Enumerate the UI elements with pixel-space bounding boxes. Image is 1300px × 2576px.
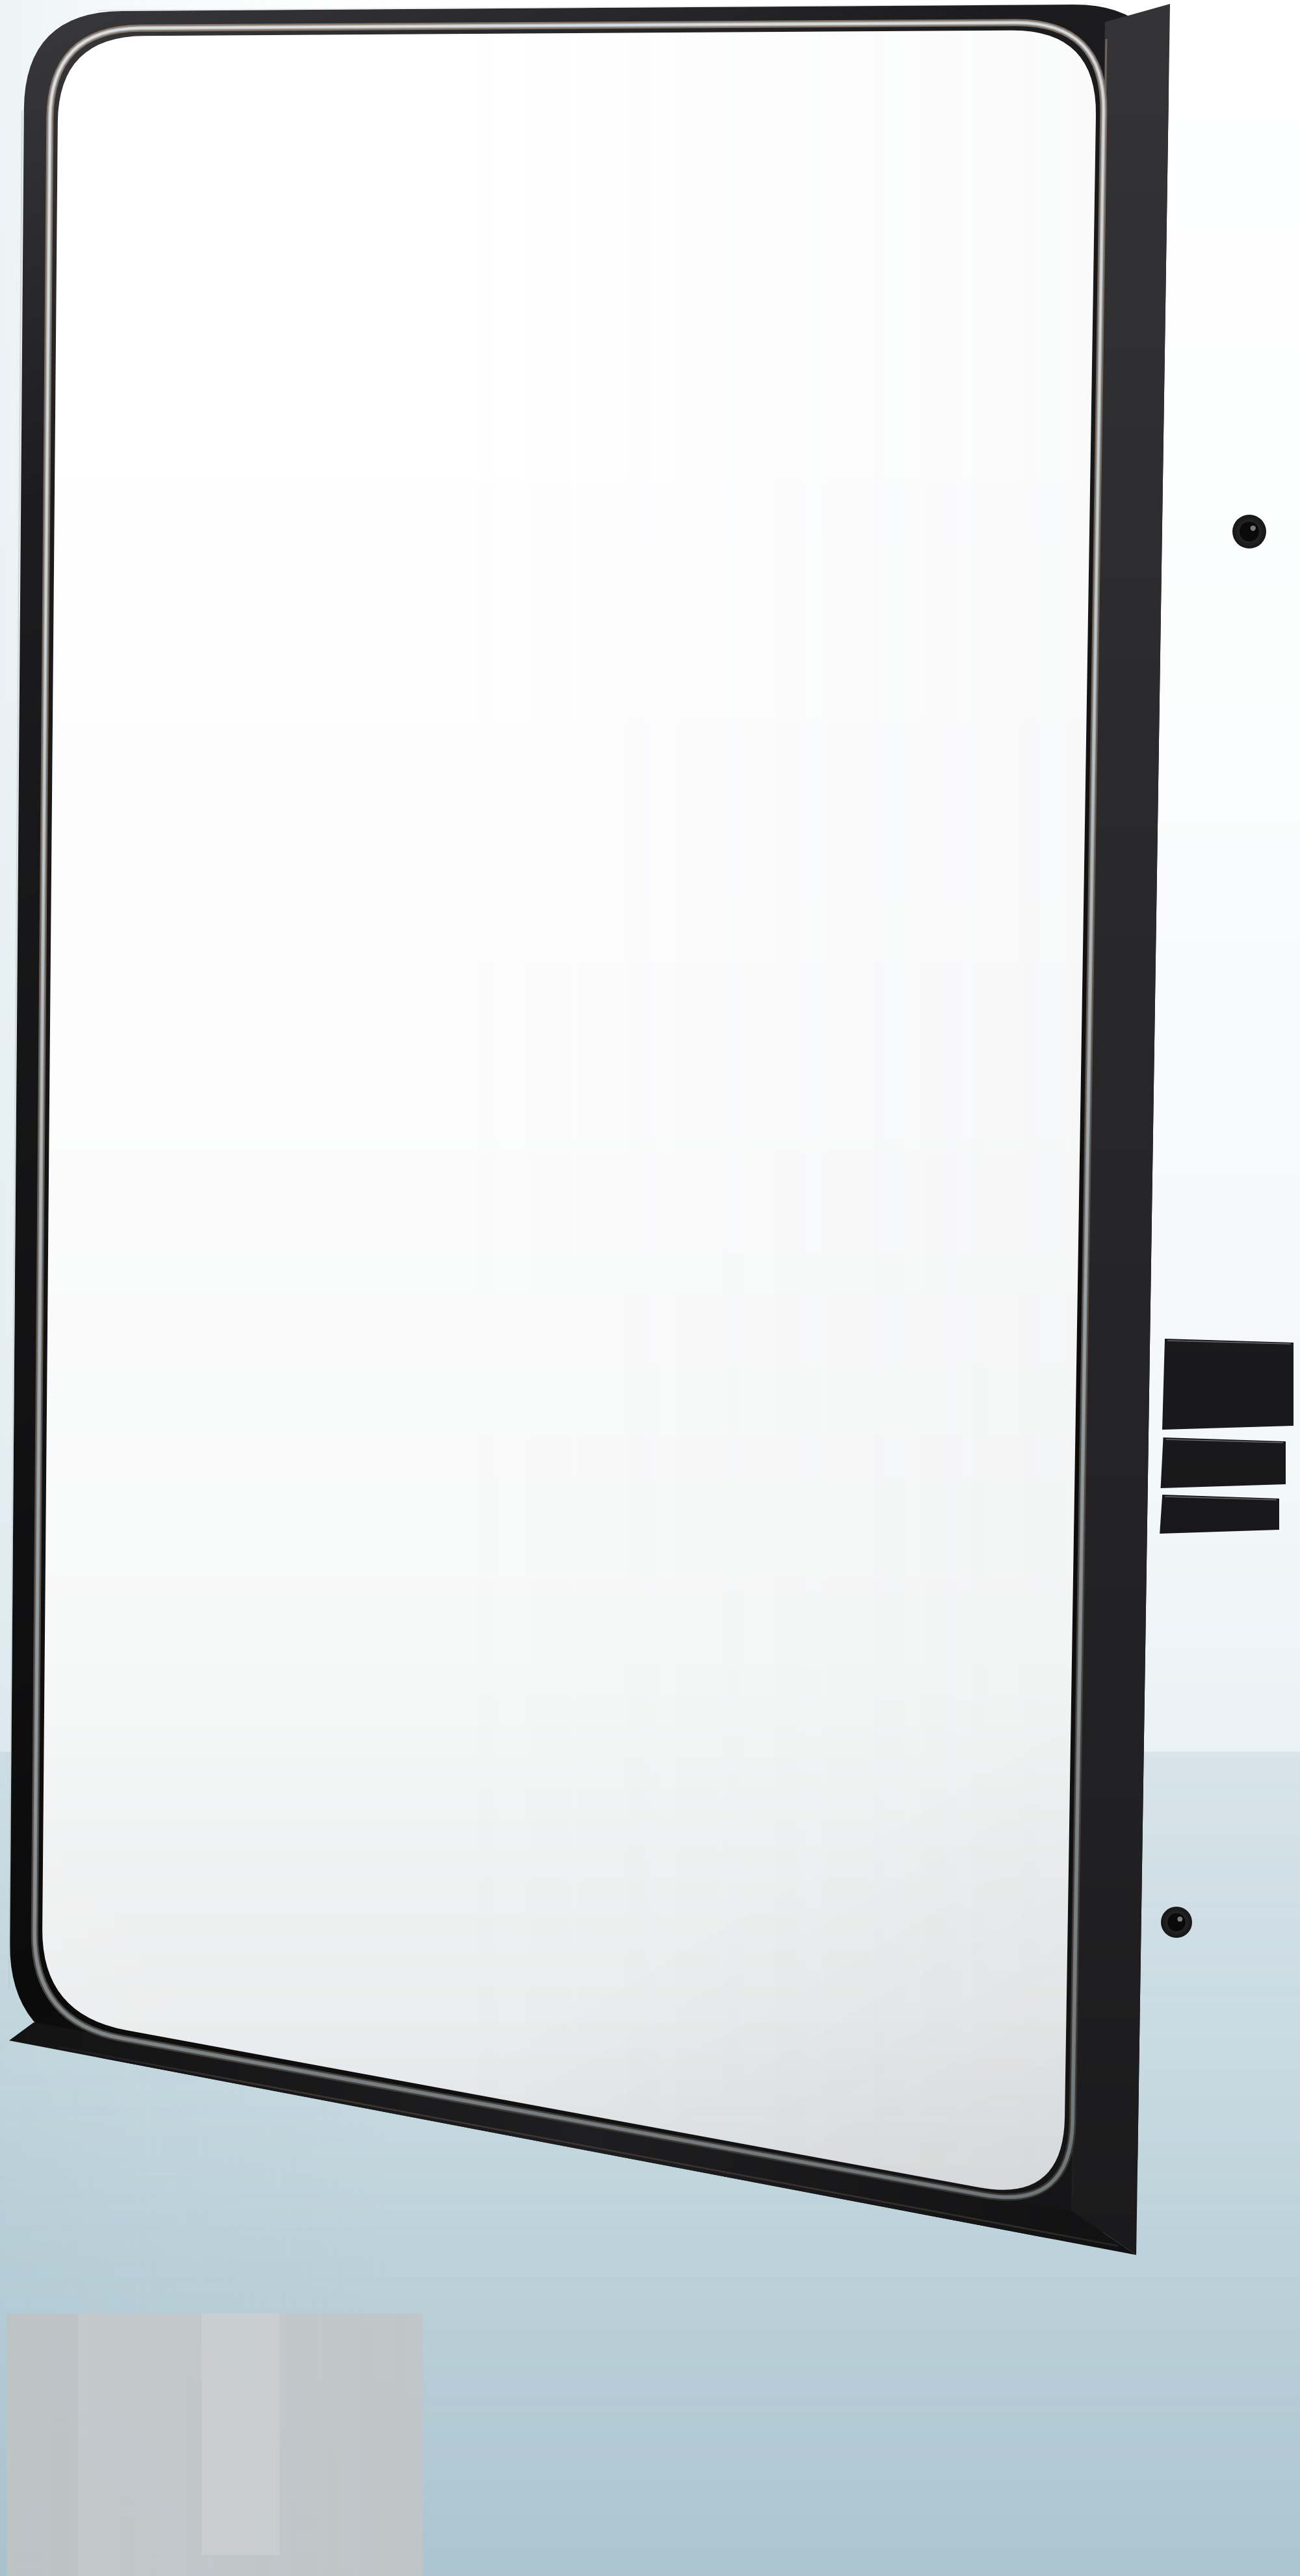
button[interactable]: Tablet device product render, blank scre… [0, 0, 1300, 2576]
